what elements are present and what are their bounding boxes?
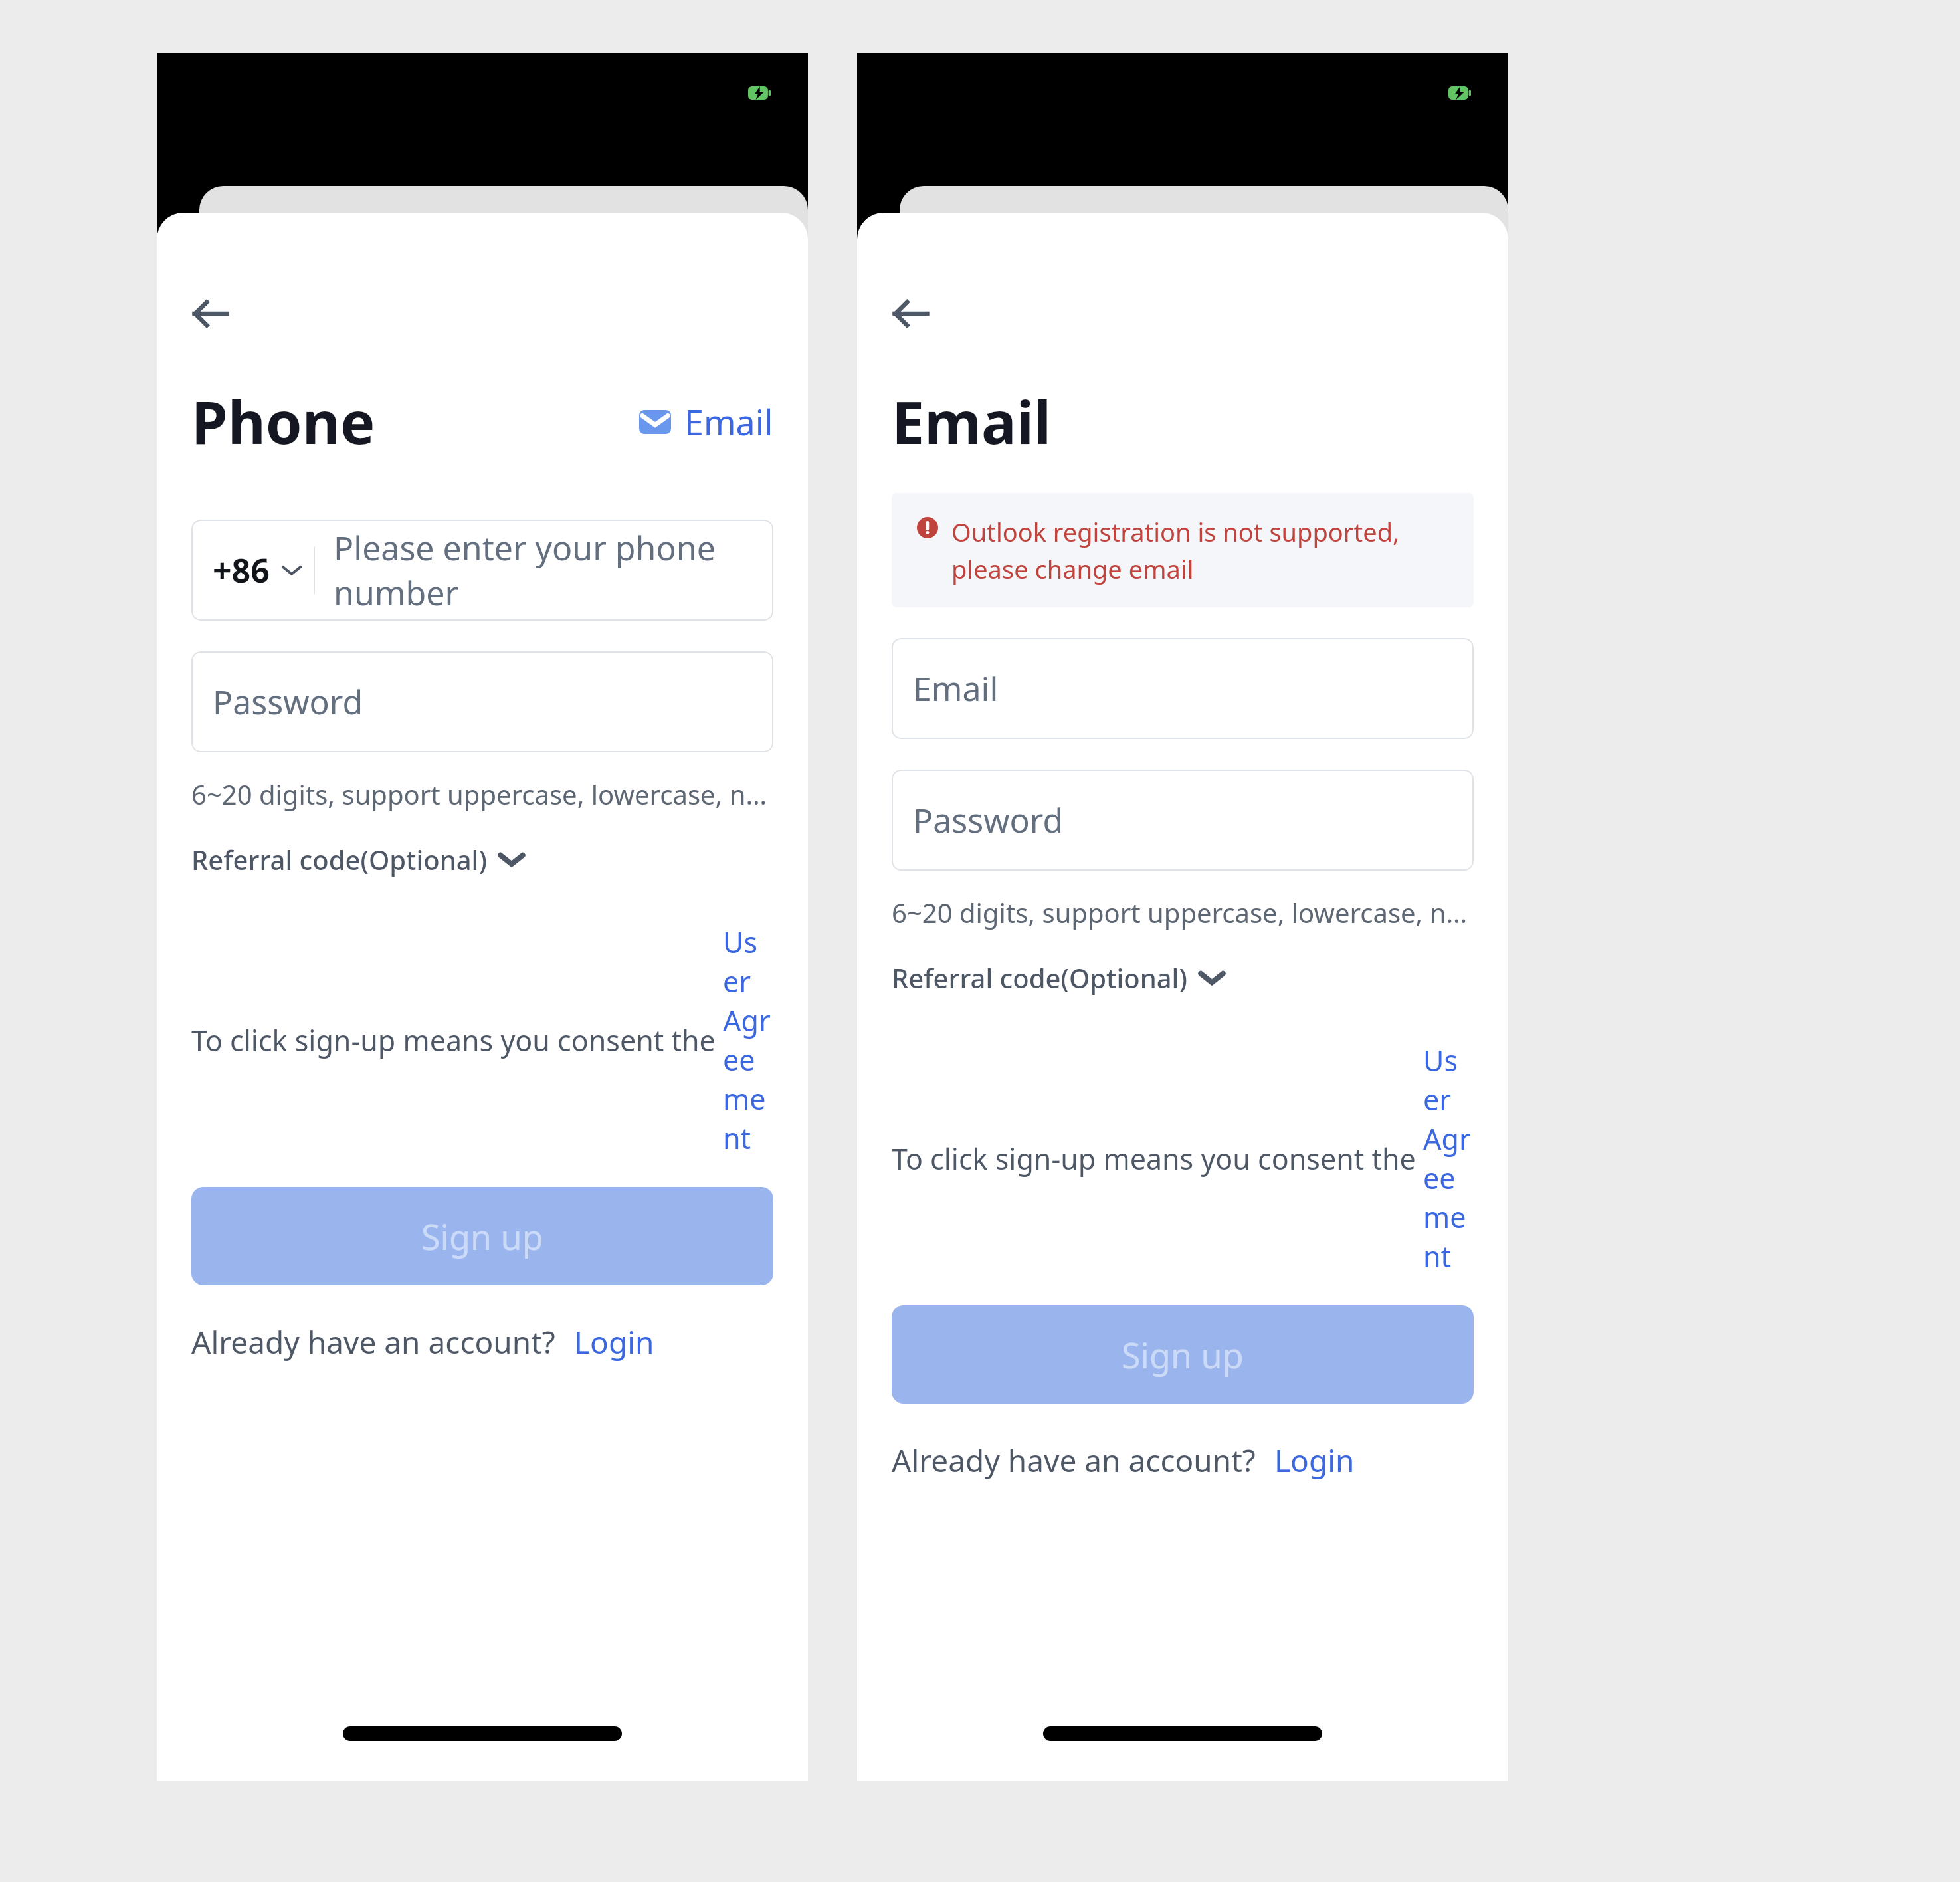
button[interactable]: Email [639, 398, 773, 445]
staticText: Password [913, 797, 1064, 843]
staticText: Email [892, 381, 1052, 461]
button[interactable]: Email [892, 638, 1474, 739]
staticText: Already have an account? [191, 1321, 555, 1363]
staticText: Referral code(Optional) [191, 841, 487, 877]
staticText: +86 [213, 548, 270, 593]
button[interactable]: Password [191, 651, 773, 752]
button[interactable]: Referral code(Optional) [191, 841, 524, 877]
staticText: Referral code(Optional) [892, 960, 1187, 995]
staticText: Please enter your phone number [334, 525, 773, 615]
button[interactable]: +86 [191, 520, 773, 621]
staticText: Sign up [1122, 1331, 1244, 1378]
button[interactable]: Referral code(Optional) [892, 960, 1225, 995]
staticText: Email [913, 666, 999, 711]
staticText: 6~20 digits, support uppercase, lowercas… [191, 776, 773, 812]
staticText: To click sign-up means you consent the [191, 1021, 723, 1060]
staticText: Email [684, 398, 773, 445]
staticText: Password [213, 679, 363, 724]
button[interactable]: User Agreement [723, 922, 773, 1158]
staticText: Already have an account? [892, 1439, 1256, 1481]
button[interactable]: Sign up [892, 1305, 1474, 1404]
button[interactable]: Back [892, 286, 947, 342]
button[interactable]: Sign up [191, 1187, 773, 1285]
button[interactable]: Password [892, 770, 1474, 871]
staticText: Outlook registration is not supported, p… [951, 514, 1450, 586]
staticText: 6~20 digits, support uppercase, lowercas… [892, 894, 1474, 930]
staticText: Phone [191, 381, 375, 461]
button[interactable]: User Agreement [1423, 1041, 1474, 1276]
button[interactable]: Login [574, 1321, 654, 1363]
staticText: Sign up [421, 1213, 543, 1260]
staticText: To click sign-up means you consent the [892, 1139, 1423, 1178]
button[interactable]: Back [191, 286, 247, 342]
button[interactable]: Login [1274, 1439, 1355, 1481]
